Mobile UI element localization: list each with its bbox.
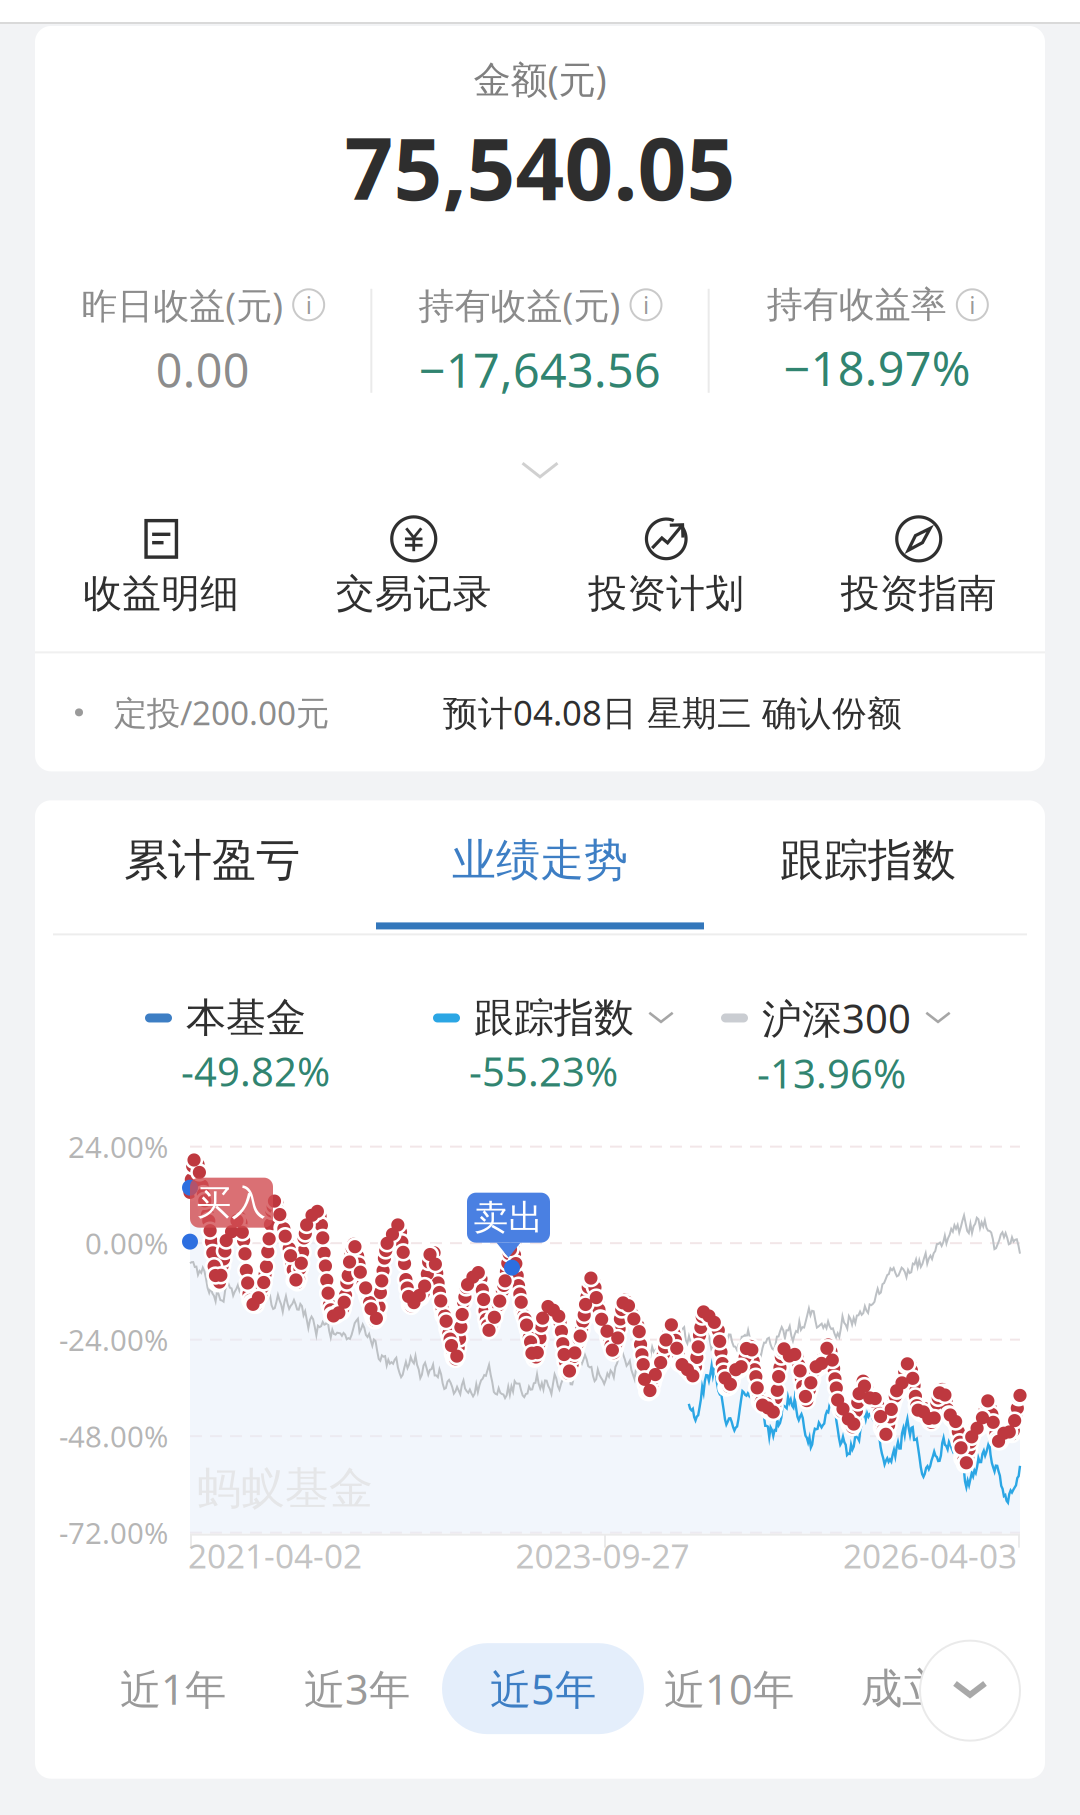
button[interactable]: 投资计划 — [540, 516, 792, 617]
staticText: 近5年 — [490, 1661, 596, 1716]
staticText: 跟踪指数 — [780, 833, 956, 887]
staticText: 昨日收益(元) — [81, 281, 283, 329]
button[interactable]: 业绩走势 — [376, 800, 704, 933]
staticText: 0.00 — [156, 339, 250, 401]
staticText: 持有收益率 — [767, 283, 947, 327]
staticText: 业绩走势 — [452, 833, 628, 887]
staticText: 2021-04-02 — [188, 1533, 362, 1578]
staticText: 2026-04-03 — [843, 1533, 1017, 1578]
staticText: 定投/200.00元 — [114, 690, 329, 734]
button[interactable]: 收益明细 — [35, 516, 287, 617]
staticText: 0.00% — [85, 1224, 168, 1263]
staticText: 2023-09-27 — [515, 1533, 689, 1578]
button[interactable]: 沪深300 — [721, 991, 951, 1100]
button[interactable]: 成立 — [822, 1642, 982, 1736]
staticText: 交易记录 — [336, 570, 492, 617]
staticText: i — [643, 289, 649, 321]
staticText: 沪深300 — [762, 991, 911, 1044]
staticText: −18.97% — [784, 337, 971, 399]
button[interactable]: 交易记录 — [287, 516, 540, 617]
staticText: 蚂蚁基金 — [197, 1462, 373, 1516]
staticText: i — [969, 289, 975, 321]
button[interactable]: 近10年 — [636, 1642, 822, 1736]
staticText: 预计04.08日 星期三 确认份额 — [443, 689, 902, 735]
staticText: 持有收益(元) — [418, 281, 620, 329]
staticText: 收益明细 — [83, 570, 239, 617]
staticText: 投资指南 — [841, 570, 997, 617]
staticText: -24.00% — [59, 1320, 168, 1359]
button[interactable]: 本基金 — [145, 993, 330, 1098]
staticText: 累计盈亏 — [124, 833, 300, 887]
staticText: -48.00% — [59, 1417, 168, 1456]
staticText: 投资计划 — [588, 570, 744, 617]
staticText: 75,540.05 — [344, 111, 735, 224]
staticText: 成立 — [861, 1663, 943, 1714]
staticText: 24.00% — [68, 1127, 168, 1166]
button[interactable]: 近3年 — [264, 1642, 450, 1736]
button[interactable]: 跟踪指数 — [433, 993, 674, 1098]
staticText: −17,643.56 — [419, 339, 661, 401]
button[interactable]: 定投/200.00元 — [35, 653, 1045, 771]
staticText: 近10年 — [664, 1661, 794, 1716]
staticText: 跟踪指数 — [474, 993, 634, 1042]
staticText: 金额(元) — [473, 54, 606, 104]
staticText: 买入 — [196, 1181, 266, 1224]
button[interactable]: 展开更多 — [920, 1641, 1020, 1741]
staticText: 近1年 — [120, 1661, 226, 1716]
button[interactable]: 近1年 — [82, 1642, 264, 1736]
button[interactable]: 累计盈亏 — [48, 800, 376, 933]
button[interactable]: 投资指南 — [792, 516, 1045, 617]
staticText: 近3年 — [304, 1661, 410, 1716]
staticText: -49.82% — [181, 1044, 330, 1098]
staticText: 本基金 — [186, 993, 306, 1042]
button[interactable]: 近5年 — [450, 1642, 636, 1736]
staticText: -72.00% — [59, 1513, 168, 1552]
staticText: i — [306, 289, 312, 321]
staticText: -55.23% — [469, 1044, 618, 1098]
staticText: 卖出 — [473, 1196, 543, 1239]
button[interactable]: 跟踪指数 — [704, 800, 1032, 933]
staticText: -13.96% — [757, 1046, 906, 1100]
